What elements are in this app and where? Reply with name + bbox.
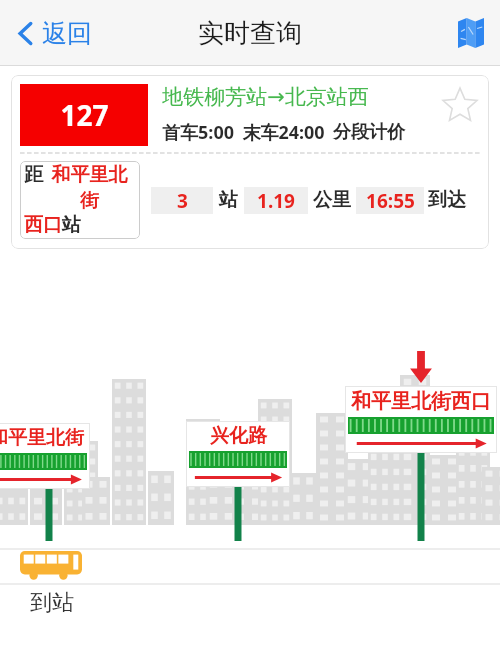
staticText: 3 bbox=[177, 188, 188, 214]
button[interactable]: Bus arriving bbox=[20, 551, 82, 581]
staticText: 站 bbox=[219, 188, 238, 212]
button[interactable]: 127 bbox=[11, 75, 489, 249]
staticText: 和平里北街 bbox=[0, 426, 84, 450]
staticText: 末车24:00 bbox=[242, 120, 325, 145]
staticText: 到站 bbox=[30, 589, 74, 617]
button[interactable]: Favourite bbox=[438, 84, 482, 128]
button[interactable]: 和平里北街西口 bbox=[345, 386, 497, 453]
staticText: 1.19 bbox=[257, 188, 295, 214]
staticText: 兴化路 bbox=[210, 424, 267, 448]
staticText: 公里 bbox=[313, 188, 351, 212]
staticText: 地铁柳芳站→北京站西 bbox=[162, 84, 369, 110]
staticText: 站 bbox=[62, 213, 81, 237]
staticText: 和平里北街 bbox=[43, 163, 136, 213]
staticText: 127 bbox=[60, 96, 109, 134]
button[interactable]: Map bbox=[442, 6, 500, 60]
staticText: 分段计价 bbox=[333, 121, 405, 144]
button[interactable]: 和平里北街 bbox=[0, 423, 90, 489]
staticText: 首车5:00 bbox=[162, 120, 234, 145]
staticText: 到达 bbox=[428, 188, 466, 212]
button[interactable]: 返回 bbox=[0, 6, 110, 61]
staticText: 返回 bbox=[42, 18, 92, 49]
staticText: 距 bbox=[24, 163, 43, 187]
staticText: 和平里北街西口 bbox=[351, 389, 491, 414]
staticText: 16:55 bbox=[366, 188, 415, 214]
staticText: 西口 bbox=[24, 213, 62, 237]
staticText: 实时查询 bbox=[198, 17, 302, 50]
button[interactable]: 兴化路 bbox=[186, 421, 290, 487]
